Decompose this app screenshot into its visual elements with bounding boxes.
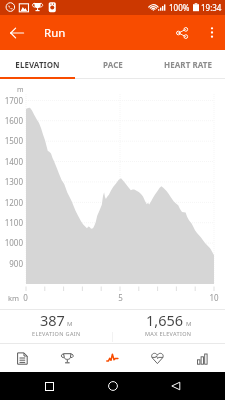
staticText: 5 [118,292,123,303]
button[interactable]: PACE [75,50,150,79]
staticText: m [17,85,24,95]
button[interactable]: Heart rate [135,344,180,372]
staticText: 1200 [4,197,23,208]
staticText: M [186,320,192,328]
staticText: 10 [209,292,219,303]
staticText: 1000 [4,237,23,248]
staticText: 1300 [4,176,23,187]
staticText: 900 [9,258,23,269]
staticText: 387 [40,310,65,330]
button[interactable]: Recents [34,372,64,400]
button[interactable]: ELEVATION [0,50,75,79]
button[interactable]: Activities [0,344,45,372]
staticText: 1100 [4,217,23,228]
button[interactable]: Trophies [45,344,90,372]
button[interactable]: Activity graph [90,344,135,372]
staticText: M [67,320,73,328]
staticText: PACE [103,59,123,70]
staticText: ELEVATION [15,59,60,70]
staticText: 1,656 [146,310,184,330]
staticText: 1600 [4,115,23,126]
staticText: 1400 [4,156,23,167]
button[interactable]: Share [166,15,198,50]
button[interactable]: 387 [0,310,112,343]
staticText: MAX ELEVATION [145,330,192,337]
staticText: km [8,293,20,303]
staticText: ELEVATION GAIN [32,330,81,337]
button[interactable]: 1,656 [112,310,225,343]
staticText: 0 [23,292,28,303]
staticText: 19:34 [201,2,222,13]
staticText: HEART RATE [164,59,212,70]
staticText: 1700 [4,95,23,106]
button[interactable]: More options [198,15,225,50]
button[interactable]: HEART RATE [150,50,225,79]
button[interactable]: Back [0,15,34,50]
staticText: 1500 [4,135,23,146]
staticText: 100% [169,2,190,13]
staticText: Run [44,25,66,41]
button[interactable]: Home [98,372,128,400]
button[interactable]: Back [161,372,191,400]
button[interactable]: Statistics [180,344,225,372]
